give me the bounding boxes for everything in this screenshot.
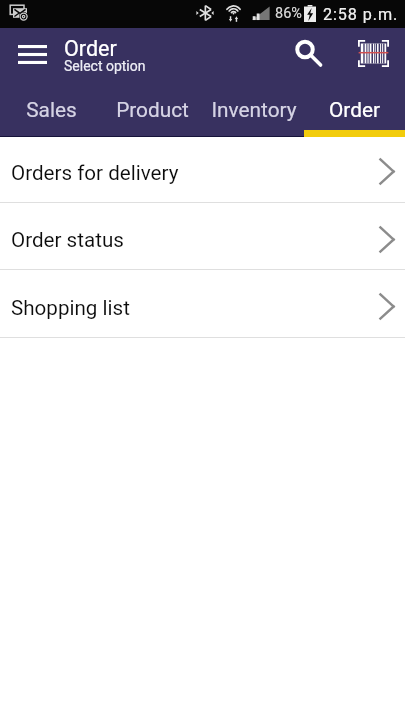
staticText: Orders for delivery <box>11 161 179 185</box>
staticText: Order <box>329 98 380 122</box>
button[interactable]: Order <box>304 92 405 137</box>
staticText: Shopping list <box>11 296 130 320</box>
staticText: Order <box>64 36 117 61</box>
button[interactable]: Order status <box>0 203 405 270</box>
staticText: Inventory <box>211 98 297 122</box>
staticText: Product <box>116 98 189 122</box>
staticText: Sales <box>26 98 77 122</box>
button[interactable]: Open navigation drawer <box>8 30 56 78</box>
button[interactable]: Scan barcode <box>349 25 397 73</box>
staticText: Order status <box>11 228 124 252</box>
staticText: 86% <box>275 5 302 22</box>
button[interactable]: Inventory <box>203 92 304 137</box>
button[interactable]: Product <box>102 92 203 137</box>
button[interactable]: Orders for delivery <box>0 137 405 203</box>
button[interactable]: Search <box>285 25 333 73</box>
staticText: 2:58 p.m. <box>323 5 399 24</box>
staticText: Select option <box>64 58 146 74</box>
button[interactable]: Sales <box>0 92 102 137</box>
button[interactable]: Shopping list <box>0 270 405 338</box>
